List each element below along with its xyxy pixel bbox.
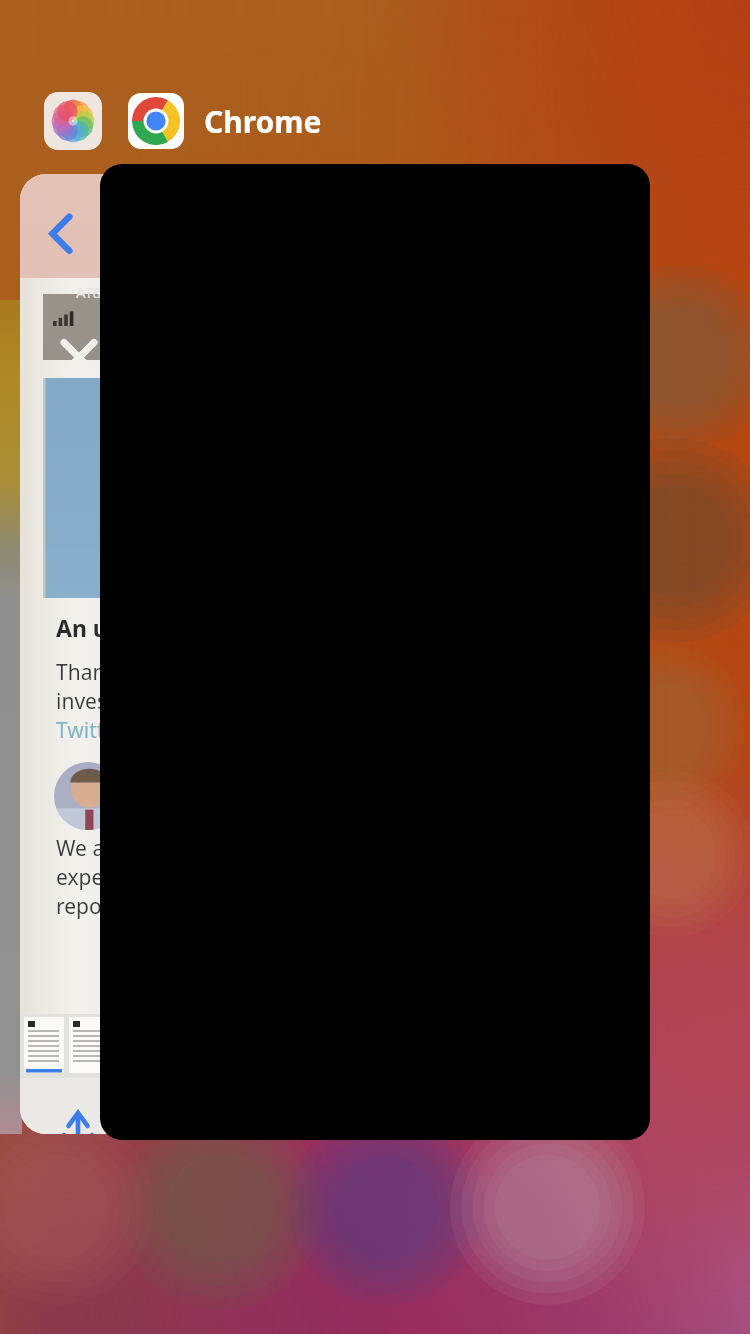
button[interactable]: Chrome: [128, 93, 184, 149]
staticText: We a: [56, 834, 105, 863]
staticText: Than: [56, 658, 106, 687]
staticText: expe: [56, 863, 104, 892]
button[interactable]: Chrome: [204, 101, 322, 142]
button[interactable]: Previous app snapshot: [0, 300, 22, 1134]
button[interactable]: Photos: [44, 92, 102, 150]
button[interactable]: Safari app snapshot: [20, 174, 230, 1134]
staticText: Twitt: [56, 716, 105, 745]
staticText: repor: [56, 892, 111, 921]
staticText: An u: [56, 612, 108, 643]
staticText: AT&: [76, 282, 104, 302]
button[interactable]: Chrome app snapshot: [100, 164, 650, 1140]
staticText: inves: [56, 687, 107, 716]
